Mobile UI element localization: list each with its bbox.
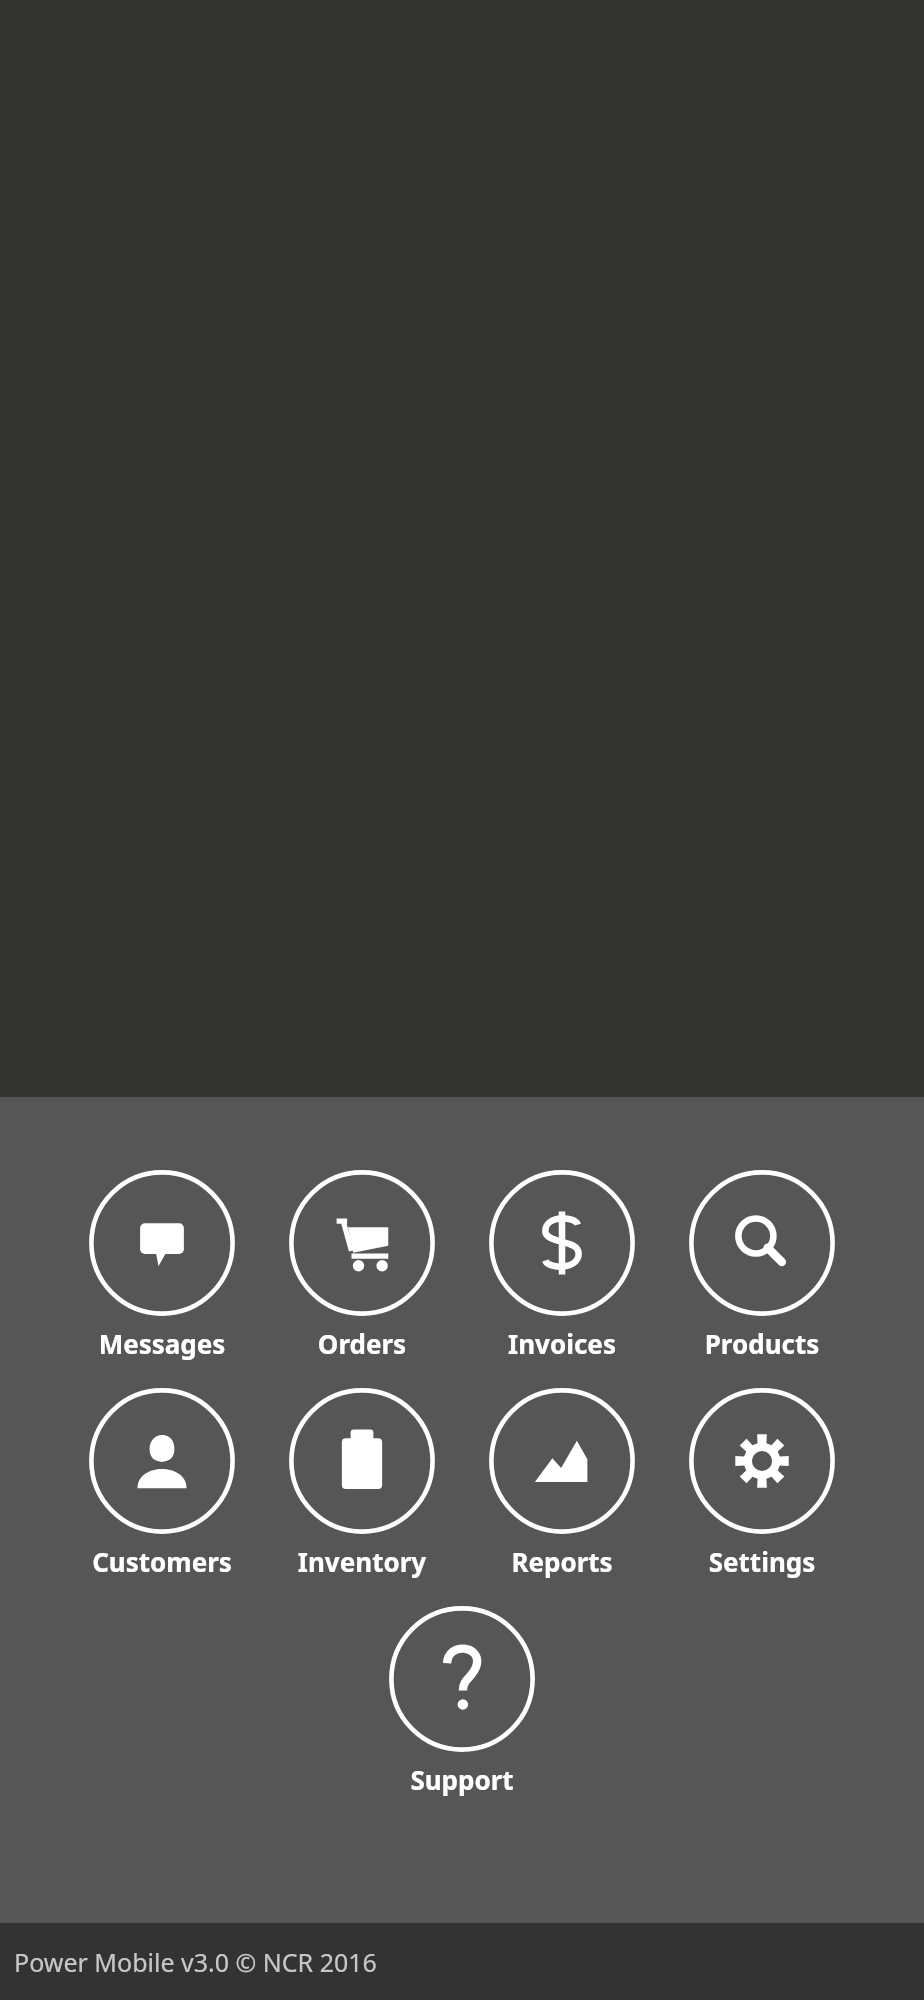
staticText: Power Mobile v3.0 © NCR 2016 — [14, 1945, 377, 1979]
button[interactable]: Products — [662, 1170, 862, 1361]
button[interactable]: Settings — [662, 1388, 862, 1579]
staticText: Support — [362, 1762, 562, 1797]
button[interactable]: Messages — [62, 1170, 262, 1361]
staticText: Customers — [62, 1544, 262, 1579]
staticText: Products — [662, 1326, 862, 1361]
staticText: Reports — [462, 1544, 662, 1579]
staticText: Messages — [62, 1326, 262, 1361]
button[interactable]: Invoices — [462, 1170, 662, 1361]
button[interactable]: Orders — [262, 1170, 462, 1361]
staticText: Settings — [662, 1544, 862, 1579]
staticText: Inventory — [262, 1544, 462, 1579]
button[interactable]: Reports — [462, 1388, 662, 1579]
button[interactable]: Inventory — [262, 1388, 462, 1579]
staticText: Orders — [262, 1326, 462, 1361]
button[interactable]: Customers — [62, 1388, 262, 1579]
staticText: Invoices — [462, 1326, 662, 1361]
button[interactable]: Support — [362, 1606, 562, 1797]
